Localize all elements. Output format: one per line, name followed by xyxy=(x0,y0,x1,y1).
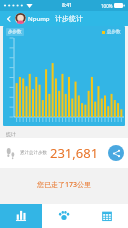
staticText: 231,681 xyxy=(50,144,99,162)
staticText: 计步统计 xyxy=(55,14,83,23)
button[interactable]: Back xyxy=(4,14,14,24)
button[interactable]: Share xyxy=(108,145,124,161)
staticText: 统计 xyxy=(6,131,16,137)
button[interactable] xyxy=(15,13,26,24)
staticText: 步步数 xyxy=(8,29,22,35)
button[interactable]: Calendar xyxy=(85,204,128,228)
staticText: 总步数 xyxy=(107,29,121,35)
staticText: 8:41 xyxy=(62,2,72,9)
staticText: Npump xyxy=(28,15,50,23)
button[interactable]: Activity xyxy=(42,204,85,228)
button[interactable]: Statistics xyxy=(0,204,42,228)
staticText: 100% xyxy=(101,3,113,9)
staticText: 您已走了173公里 xyxy=(0,180,128,190)
staticText: 累计总计步数 xyxy=(20,150,47,156)
